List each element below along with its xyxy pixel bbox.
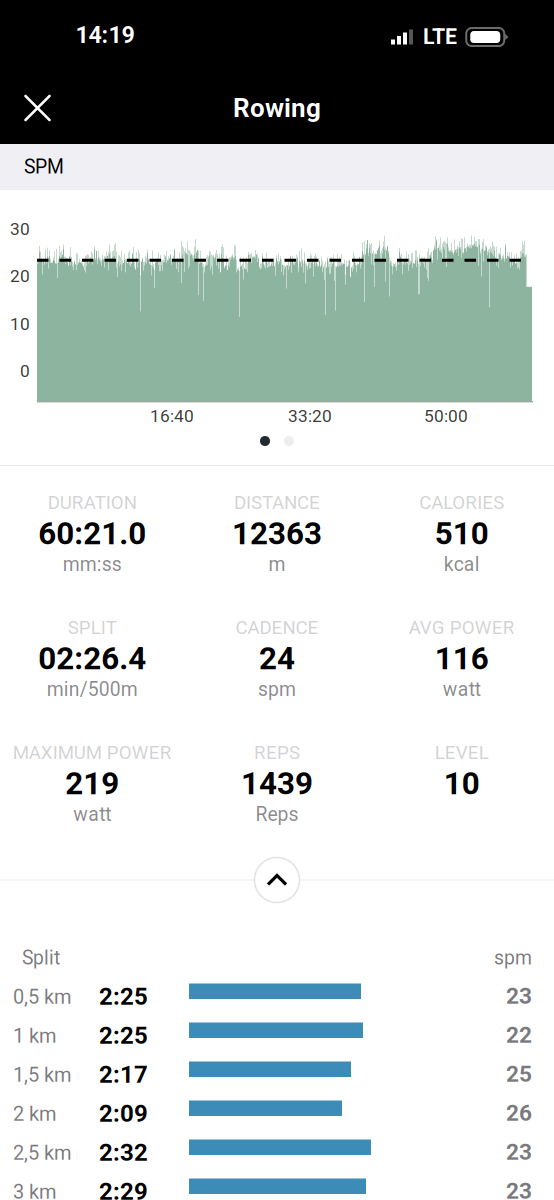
staticText: 10 (10, 314, 30, 334)
staticText: 33:20 (288, 406, 332, 426)
staticText: 23 (506, 983, 532, 1009)
staticText: spm (258, 678, 296, 701)
staticText: mm:ss (63, 553, 122, 576)
staticText: DISTANCE (234, 492, 320, 513)
staticText: 60:21.0 (38, 515, 146, 552)
staticText: 1 km (13, 1024, 57, 1048)
staticText: MAXIMUM POWER (13, 742, 172, 763)
staticText: 2:25 (99, 982, 148, 1010)
button[interactable]: Collapse details (254, 857, 299, 902)
staticText: 3 km (13, 1180, 57, 1200)
staticText: 25 (506, 1061, 532, 1087)
staticText: 0 (20, 361, 30, 381)
staticText: 50:00 (424, 406, 468, 426)
staticText: 2 km (13, 1102, 57, 1126)
button[interactable]: 2 km (0, 1096, 554, 1135)
staticText: REPS (254, 742, 300, 763)
staticText: 2:29 (99, 1177, 148, 1200)
staticText: SPM (24, 156, 64, 178)
staticText: CALORIES (419, 492, 504, 513)
button[interactable]: 1 km (0, 1018, 554, 1057)
staticText: 0,5 km (13, 985, 72, 1009)
button[interactable]: 2,5 km (0, 1135, 554, 1174)
staticText: 2:09 (99, 1099, 148, 1127)
staticText: 30 (10, 219, 30, 239)
staticText: 02:26.4 (38, 640, 146, 677)
staticText: m (268, 553, 285, 576)
staticText: Split (22, 947, 60, 969)
staticText: AVG POWER (409, 617, 515, 638)
button[interactable]: 0,5 km (0, 979, 554, 1018)
staticText: 10 (444, 765, 480, 802)
staticText: 2:32 (99, 1138, 148, 1166)
staticText: 24 (259, 640, 295, 677)
staticText: LTE (423, 24, 457, 49)
staticText: 16:40 (150, 406, 194, 426)
staticText: Reps (255, 803, 298, 826)
staticText: 23 (506, 1139, 532, 1165)
staticText: 14:19 (75, 21, 134, 49)
staticText: spm (494, 947, 532, 969)
button[interactable]: Close (0, 75, 68, 140)
staticText: watt (443, 678, 481, 701)
staticText: watt (73, 803, 111, 826)
staticText: 116 (435, 640, 489, 677)
staticText: LEVEL (435, 742, 489, 763)
staticText: 2,5 km (13, 1141, 72, 1165)
staticText: 1439 (241, 765, 313, 802)
staticText: min/500m (47, 678, 138, 701)
staticText: kcal (444, 553, 480, 576)
staticText: 219 (65, 765, 119, 802)
staticText: Rowing (233, 93, 321, 123)
staticText: 1,5 km (13, 1063, 72, 1087)
staticText: 2:25 (99, 1021, 148, 1049)
staticText: DURATION (48, 492, 137, 513)
staticText: SPLIT (68, 617, 117, 638)
staticText: 2:17 (99, 1060, 148, 1088)
staticText: 510 (435, 515, 489, 552)
button[interactable]: 3 km (0, 1174, 554, 1200)
staticText: 26 (506, 1100, 532, 1126)
staticText: CADENCE (235, 617, 318, 638)
staticText: 12363 (232, 515, 322, 552)
staticText: 23 (506, 1178, 532, 1200)
staticText: 22 (506, 1022, 532, 1048)
staticText: 20 (10, 266, 30, 286)
button[interactable]: 1,5 km (0, 1057, 554, 1096)
